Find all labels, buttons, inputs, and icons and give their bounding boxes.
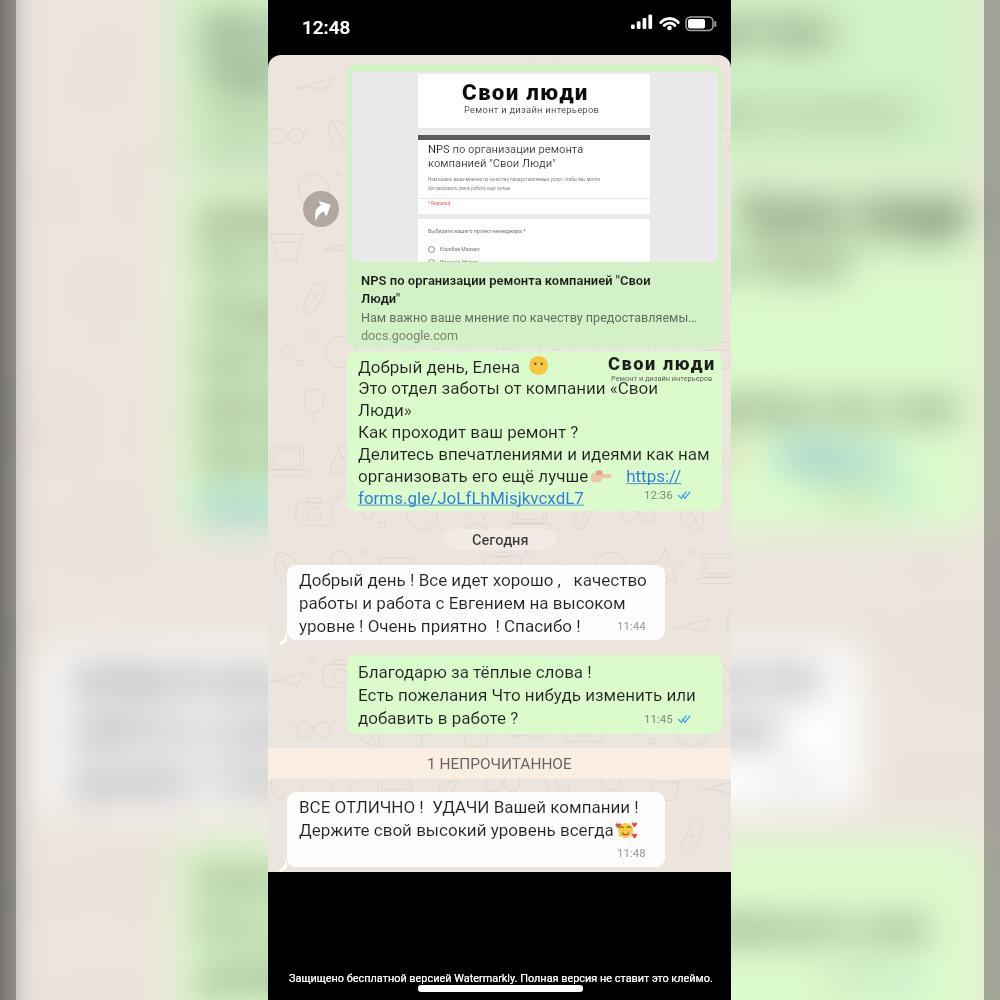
staticText: NPS по организации ремонта компанией "Св… (205, 16, 831, 87)
staticText: ВСЕ ОТЛИЧНО ! УДАЧИ Вашей компании ! Дер… (299, 797, 639, 840)
staticText: Добрый день ! Все идет хорошо , качество… (299, 570, 647, 636)
staticText: Ремонт и дизайн интерьеров (745, 234, 965, 253)
staticText: 12:36 (816, 480, 879, 508)
staticText: Нам важно ваше мнение по качеству предос… (361, 310, 721, 325)
button[interactable]: Добрый день ! Все идет хорошо , качество… (45, 647, 861, 809)
staticText: docs.google.com (205, 135, 417, 167)
staticText: Иванова Мария (440, 259, 478, 262)
button[interactable]: Forward message (303, 191, 339, 227)
staticText: Добрый день ! Все идет хорошо , качество… (71, 657, 823, 800)
staticText: Защищено бесплатной версией Watermarkly.… (289, 972, 749, 985)
staticText: Ремонт и дизайн интерьеров (464, 104, 600, 115)
staticText: Свои люди (608, 353, 716, 374)
staticText: Добрый день, Елена Это отдел заботы от к… (198, 197, 959, 523)
button[interactable]: Сегодня (382, 569, 628, 614)
staticText: Коробов Михаил (440, 246, 480, 252)
staticText: docs.google.com (361, 328, 459, 343)
staticText: * Required (428, 201, 451, 207)
staticText: Ремонт и дизайн интерьеров (611, 374, 713, 383)
staticText: 11:48 (617, 846, 646, 859)
staticText: Свои люди (738, 189, 972, 234)
button[interactable]: Свои люди (347, 64, 722, 347)
staticText: 11:44 (617, 619, 646, 632)
button[interactable]: Благодарю за тёплые слова ! Есть пожелан… (347, 655, 722, 734)
staticText: Выберите вашего проект-менеджера * (428, 228, 526, 234)
staticText: Сегодня (445, 573, 568, 610)
button[interactable]: Сегодня (443, 529, 557, 550)
staticText: 12:36 (644, 488, 673, 501)
staticText: Сегодня (472, 531, 529, 548)
staticText: 1 НЕПРОЧИТАННОЕ (427, 755, 572, 773)
staticText: NPS по организации ремонта компанией "Св… (361, 273, 651, 306)
staticText: Свои люди (462, 79, 589, 105)
button[interactable]: ВСЕ ОТЛИЧНО ! УДАЧИ Вашей компании ! Дер… (287, 792, 665, 867)
staticText: Благодарю за тёплые слова ! Есть пожелан… (358, 662, 696, 728)
staticText: 12:48 (302, 16, 351, 38)
staticText: Нам важно ваше мнение по качеству предос… (428, 177, 600, 191)
button[interactable]: Добрый день ! Все идет хорошо , качество… (287, 565, 665, 640)
button[interactable]: Благодарю за тёплые слова ! Есть пожелан… (175, 841, 985, 1000)
staticText: 11:45 (644, 712, 673, 725)
staticText: Нам важно ваше мнение по качеству предос… (205, 96, 982, 128)
button[interactable]: Свои люди (175, 184, 985, 530)
button[interactable]: Свои люди (175, 0, 985, 176)
button[interactable]: Свои люди (347, 351, 722, 511)
staticText: NPS по организации ремонта компанией "Св… (428, 143, 584, 170)
staticText: Благодарю за тёплые слова ! Есть пожелан… (198, 856, 928, 999)
staticText: Добрый день, Елена Это отдел заботы от к… (358, 357, 710, 508)
